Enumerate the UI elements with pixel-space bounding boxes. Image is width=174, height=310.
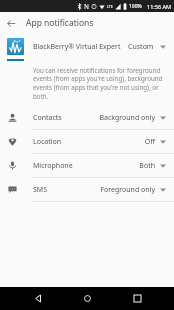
staticText: Microphone [33,161,73,171]
button[interactable]: Contacts [0,106,174,129]
button[interactable]: Change Contacts setting [155,110,171,126]
button[interactable]: Back [0,12,22,34]
staticText: Off [144,137,155,147]
button[interactable]: Change SMS setting [155,182,171,198]
staticText: SMS [33,185,48,195]
button[interactable]: Home [75,287,99,310]
staticText: Custom [128,42,154,52]
staticText: 100% [129,3,142,10]
staticText: Background only [99,113,155,123]
button[interactable]: Change Microphone setting [155,158,171,174]
button[interactable]: Change Location setting [155,134,171,150]
staticText: App notifications [26,17,94,29]
button[interactable]: Recent apps [125,287,149,310]
staticText: Contacts [33,113,62,123]
staticText: Location [33,137,62,147]
staticText: BlackBerry® Virtual Expert [33,42,121,52]
button[interactable]: Microphone [0,154,174,177]
button[interactable]: SMS [0,178,174,201]
staticText: Both [139,161,155,171]
staticText: Foreground only [100,185,155,195]
staticText: LTE [107,4,113,9]
button[interactable]: Back [26,287,50,310]
button[interactable]: BlackBerry® Virtual Expert [0,34,174,59]
button[interactable]: Expand options [155,39,171,55]
button[interactable]: Location [0,130,174,153]
staticText: You can receive notifications for foregr… [33,66,164,100]
staticText: 11:56 AM [147,3,171,10]
